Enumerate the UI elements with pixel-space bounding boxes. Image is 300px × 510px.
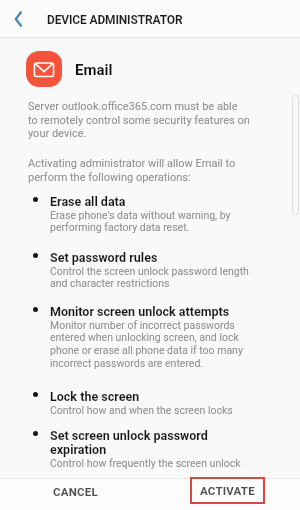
staticText: Activating administrator will allow Emai… bbox=[28, 157, 236, 183]
staticText: Control how frequently the screen unlock bbox=[50, 457, 241, 469]
button[interactable] bbox=[4, 4, 34, 34]
staticText: Server outlook.office365.com must be abl… bbox=[28, 100, 250, 139]
staticText: Control the screen unlock password lengt… bbox=[50, 265, 249, 290]
button[interactable]: ACTIVATE bbox=[190, 477, 265, 504]
staticText: Erase phone's data without warning, by p… bbox=[50, 209, 231, 234]
staticText: Set screen unlock password expiration bbox=[50, 428, 208, 458]
staticText: Monitor number of incorrect passwords en… bbox=[50, 319, 243, 370]
staticText: Erase all data bbox=[50, 194, 126, 209]
staticText: Monitor screen unlock attempts bbox=[50, 304, 230, 319]
staticText: Lock the screen bbox=[50, 389, 140, 404]
staticText: Set password rules bbox=[50, 250, 158, 265]
button[interactable]: CANCEL bbox=[40, 476, 110, 506]
staticText: Control how and when the screen locks bbox=[50, 404, 233, 416]
staticText: ACTIVATE bbox=[200, 484, 255, 497]
staticText: Email bbox=[75, 61, 113, 79]
staticText: DEVICE ADMINISTRATOR bbox=[47, 13, 183, 27]
staticText: CANCEL bbox=[53, 485, 98, 498]
